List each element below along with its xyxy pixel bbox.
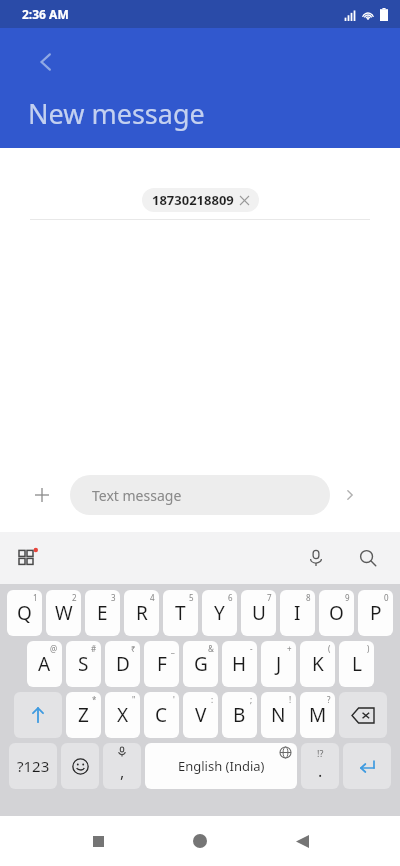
button[interactable]: N xyxy=(261,692,296,738)
staticText: 1 xyxy=(33,592,38,603)
staticText: ; xyxy=(250,694,253,705)
staticText: 2:36 AM xyxy=(22,6,69,22)
button[interactable]: . xyxy=(301,743,339,789)
staticText: 9 xyxy=(345,592,350,603)
staticText: @ xyxy=(50,643,58,654)
staticText: 6 xyxy=(228,592,233,603)
button[interactable]: K xyxy=(300,641,335,687)
button[interactable]: U xyxy=(241,590,276,636)
button[interactable]: H xyxy=(222,641,257,687)
staticText: V xyxy=(195,702,207,728)
staticText: : xyxy=(211,694,214,705)
staticText: ?123 xyxy=(17,756,50,776)
button[interactable]: L xyxy=(339,641,374,687)
staticText: O xyxy=(329,600,344,626)
button[interactable]: J xyxy=(261,641,296,687)
button[interactable]: X xyxy=(105,692,140,738)
staticText: U xyxy=(252,600,266,626)
staticText: 5 xyxy=(189,592,194,603)
button[interactable]: Z xyxy=(66,692,101,738)
button[interactable]: Y xyxy=(202,590,237,636)
button[interactable]: English (India) xyxy=(145,743,297,789)
button[interactable]: Keyboard tools xyxy=(14,543,44,573)
button[interactable]: T xyxy=(163,590,198,636)
staticText: Y xyxy=(214,600,225,626)
staticText: K xyxy=(312,651,324,677)
button[interactable]: V xyxy=(183,692,218,738)
staticText: J xyxy=(276,651,282,677)
button[interactable]: G xyxy=(183,641,218,687)
button[interactable]: Shift xyxy=(14,692,62,738)
button[interactable]: C xyxy=(144,692,179,738)
button[interactable]: B xyxy=(222,692,257,738)
button[interactable]: Home xyxy=(182,823,218,859)
button[interactable]: Enter xyxy=(343,743,391,789)
staticText: Q xyxy=(17,600,32,626)
button[interactable]: 18730218809 xyxy=(142,188,259,212)
staticText: - xyxy=(250,643,253,654)
staticText: # xyxy=(91,643,97,654)
staticText: 8 xyxy=(306,592,311,603)
staticText: ( xyxy=(328,643,331,654)
staticText: H xyxy=(232,651,247,677)
button[interactable]: F xyxy=(144,641,179,687)
button[interactable]: Back xyxy=(30,46,62,78)
button[interactable]: Add attachment xyxy=(28,481,56,509)
staticText: ? xyxy=(327,694,331,705)
staticText: . xyxy=(318,760,323,782)
button[interactable]: Text message xyxy=(70,475,330,515)
staticText: 7 xyxy=(267,592,272,603)
staticText: 4 xyxy=(150,592,155,603)
staticText: Z xyxy=(78,702,89,728)
button[interactable]: ?123 xyxy=(9,743,57,789)
staticText: , xyxy=(120,761,125,783)
staticText: E xyxy=(97,600,108,626)
staticText: N xyxy=(271,702,286,728)
staticText: !? xyxy=(317,747,324,759)
staticText: ) xyxy=(367,643,370,654)
staticText: I xyxy=(294,600,301,626)
button[interactable]: D xyxy=(105,641,140,687)
staticText: A xyxy=(38,651,51,677)
staticText: * xyxy=(92,694,97,705)
staticText: ₹ xyxy=(131,643,136,654)
button[interactable]: M xyxy=(300,692,335,738)
staticText: X xyxy=(117,702,129,728)
button[interactable]: R xyxy=(124,590,159,636)
staticText: R xyxy=(136,600,148,626)
staticText: ' xyxy=(173,694,175,705)
staticText: 3 xyxy=(111,592,116,603)
button[interactable]: Send xyxy=(338,483,362,507)
staticText: _ xyxy=(171,643,175,654)
button[interactable]: W xyxy=(46,590,81,636)
button[interactable]: Back xyxy=(284,823,320,859)
staticText: S xyxy=(78,651,89,677)
button[interactable]: E xyxy=(85,590,120,636)
staticText: English (India) xyxy=(178,757,265,775)
button[interactable]: I xyxy=(280,590,315,636)
button[interactable]: Search xyxy=(354,544,382,572)
staticText: 2 xyxy=(72,592,77,603)
staticText: " xyxy=(132,694,136,705)
staticText: 0 xyxy=(384,592,389,603)
button[interactable]: P xyxy=(358,590,393,636)
staticText: G xyxy=(194,651,208,677)
staticText: T xyxy=(175,600,186,626)
button[interactable]: S xyxy=(66,641,101,687)
button[interactable]: Q xyxy=(7,590,42,636)
button[interactable]: A xyxy=(27,641,62,687)
button[interactable]: O xyxy=(319,590,354,636)
staticText: M xyxy=(309,702,327,728)
staticText: New message xyxy=(28,95,205,132)
staticText: F xyxy=(157,651,167,677)
staticText: W xyxy=(55,600,73,626)
button[interactable]: Voice input xyxy=(302,544,330,572)
staticText: L xyxy=(352,651,362,677)
button[interactable]: , xyxy=(103,743,141,789)
staticText: D xyxy=(116,651,130,677)
button[interactable]: Emoji xyxy=(61,743,99,789)
button[interactable]: Recents xyxy=(80,823,116,859)
staticText: & xyxy=(208,643,214,654)
staticText: ! xyxy=(289,694,292,705)
button[interactable]: Backspace xyxy=(339,692,387,738)
